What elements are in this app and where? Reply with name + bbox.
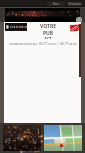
button[interactable] (5, 23, 27, 31)
button[interactable]: VOTRE PUB ICI (37, 23, 59, 39)
button[interactable]: Nous contacter (47, 2, 65, 6)
staticText: Newsletter (68, 2, 82, 6)
button[interactable]: Photo gallery (3, 125, 41, 151)
staticText: Nous contacter (47, 2, 65, 6)
button[interactable]: Newsletter (68, 2, 82, 6)
button[interactable]: Map (44, 125, 82, 151)
staticText: VOTRE PUB ICI (37, 23, 59, 39)
button[interactable]: Menu (76, 17, 82, 23)
staticText: contactez-nous au : 06.77.xx.xx / 06.77.… (9, 42, 77, 46)
button[interactable] (69, 23, 80, 33)
